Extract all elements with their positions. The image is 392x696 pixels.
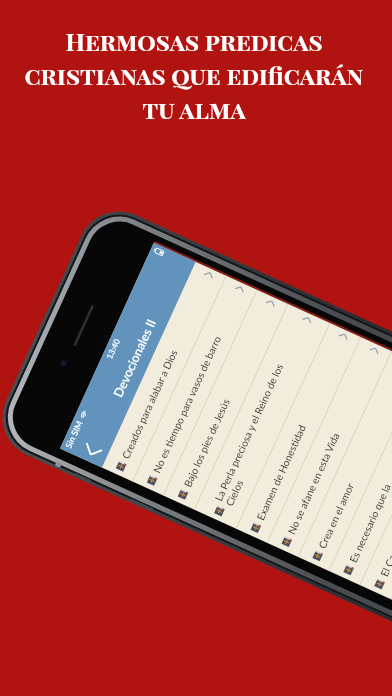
staticText: Crea en el amor bbox=[316, 363, 392, 550]
button[interactable]: Creados para alabar a Dios bbox=[102, 262, 227, 482]
button[interactable]: No es tiempo para vasos de barro bbox=[133, 276, 258, 496]
button[interactable]: Es necesario que la bbox=[329, 365, 392, 585]
staticText: Es necesario que la bbox=[347, 377, 392, 564]
button[interactable]: Back bbox=[73, 434, 111, 467]
staticText: Bajo los pies de Jesús bbox=[181, 302, 275, 489]
button[interactable]: No se afane en esta Vida bbox=[268, 337, 392, 557]
staticText: No se afane en esta Vida bbox=[285, 349, 379, 536]
staticText: 13:40 bbox=[104, 336, 122, 361]
button[interactable]: Bajo los pies de Jesús bbox=[164, 290, 288, 510]
staticText: Examen de Honestidad bbox=[254, 335, 348, 522]
button[interactable]: El Camino bbox=[360, 380, 392, 599]
button[interactable]: La Perla preciosa y el Reino de los Ciel… bbox=[195, 304, 330, 529]
staticText: No es tiempo para vasos de barro bbox=[150, 288, 244, 475]
staticText: Sin SIM bbox=[64, 419, 85, 450]
staticText: Devocionales II bbox=[110, 317, 159, 400]
staticText: Hermosas predicas cristianas que edifica… bbox=[0, 25, 390, 125]
staticText: Creados para alabar a Dios bbox=[119, 274, 213, 461]
staticText: El Camino bbox=[378, 391, 392, 578]
button[interactable]: Crea en el amor bbox=[298, 351, 392, 571]
staticText: La Perla preciosa y el Reino de los Ciel… bbox=[212, 316, 317, 508]
button[interactable]: Examen de Honestidad bbox=[237, 323, 361, 543]
button[interactable]: La Gracia bbox=[391, 394, 392, 613]
